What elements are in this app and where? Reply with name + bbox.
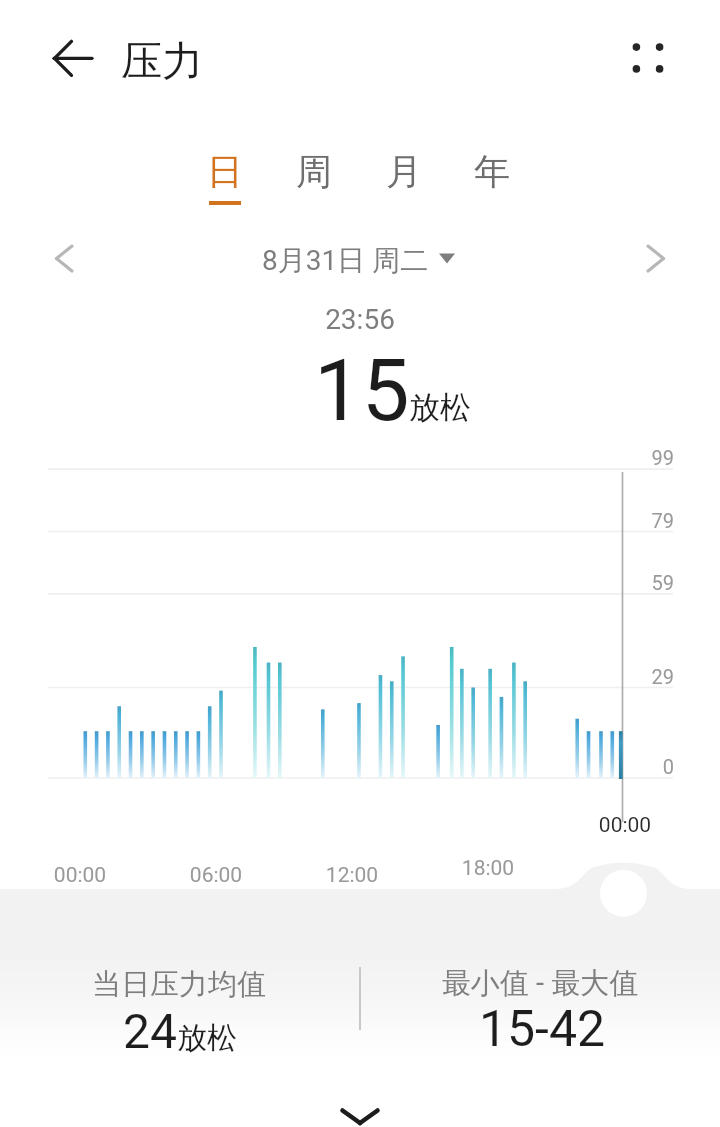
staticText: 00:00	[35, 863, 125, 888]
staticText: 年	[460, 149, 524, 194]
staticText: 00:00	[580, 813, 670, 838]
button[interactable]: 年	[460, 149, 524, 205]
button[interactable]: 8月31日 周二	[255, 240, 463, 280]
staticText: 79	[614, 509, 674, 532]
staticText: 06:00	[171, 863, 261, 888]
staticText: 18:00	[443, 856, 533, 881]
staticText: 23:56	[0, 303, 720, 336]
staticText: 日	[193, 149, 257, 194]
staticText: 最小值 - 最大值	[380, 965, 700, 1002]
staticText: 29	[614, 665, 674, 688]
staticText: 24	[123, 1003, 177, 1059]
staticText: 12:00	[307, 863, 397, 888]
staticText: 周	[282, 149, 346, 194]
button[interactable]: Next day	[630, 233, 682, 285]
button[interactable]: Collapse	[330, 1089, 390, 1127]
staticText: 当日压力均值	[19, 966, 339, 1003]
button[interactable]: More options	[621, 31, 675, 85]
button[interactable]: 日	[193, 149, 257, 205]
staticText: 放松	[177, 1019, 237, 1057]
staticText: 59	[614, 571, 674, 594]
staticText: 15	[314, 341, 410, 441]
button[interactable]: 周	[282, 149, 346, 205]
staticText: 放松	[409, 388, 471, 427]
button[interactable]: Back	[40, 32, 92, 84]
staticText: 压力	[121, 36, 203, 88]
staticText: 月	[372, 149, 436, 194]
staticText: 8月31日 周二	[262, 243, 429, 278]
staticText: 15-42	[382, 1000, 702, 1059]
button[interactable]: Previous day	[38, 233, 90, 285]
staticText: 99	[614, 446, 674, 469]
staticText: 0	[614, 755, 674, 778]
button[interactable]: 月	[372, 149, 436, 205]
